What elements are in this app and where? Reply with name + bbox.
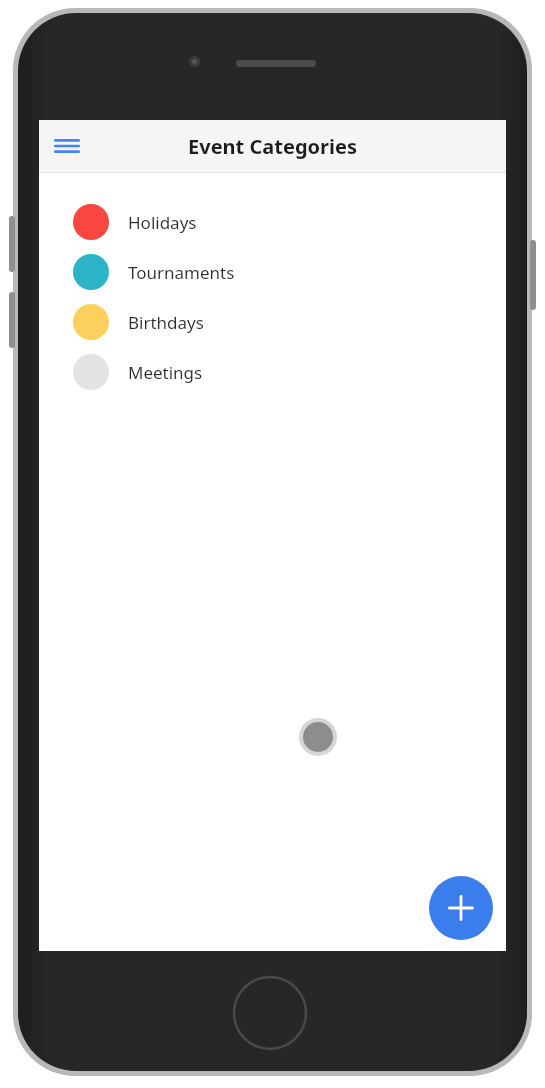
button[interactable]: Open navigation menu xyxy=(47,126,87,166)
button[interactable]: Tournaments xyxy=(39,247,506,297)
staticText: Birthdays xyxy=(128,311,204,334)
staticText: Meetings xyxy=(128,361,203,384)
button[interactable]: Holidays xyxy=(39,197,506,247)
staticText: Tournaments xyxy=(128,261,235,284)
button[interactable]: Birthdays xyxy=(39,297,506,347)
button[interactable]: Add category xyxy=(429,876,493,940)
staticText: Event Categories xyxy=(188,133,357,160)
button[interactable]: Meetings xyxy=(39,347,506,397)
staticText: Holidays xyxy=(128,211,197,234)
